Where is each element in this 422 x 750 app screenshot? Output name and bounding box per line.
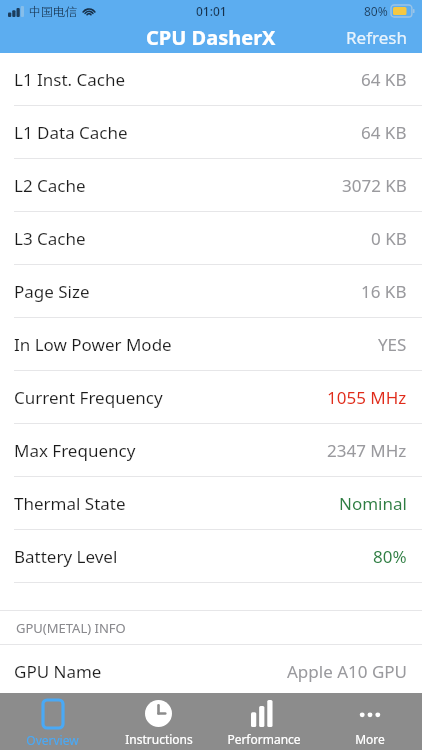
button[interactable]: Performance — [211, 693, 316, 750]
staticText: Max Frequency — [14, 439, 136, 462]
staticText: Battery Level — [14, 545, 118, 568]
staticText: Nominal — [339, 492, 407, 515]
staticText: 80% — [373, 545, 407, 568]
button[interactable]: GPU Name — [0, 645, 422, 698]
staticText: L3 Cache — [14, 227, 86, 250]
staticText: Overview — [26, 732, 79, 748]
staticText: CPU DasherX — [146, 24, 276, 51]
staticText: L1 Inst. Cache — [14, 68, 126, 91]
staticText: 16 KB — [361, 280, 407, 303]
staticText: Page Size — [14, 280, 90, 303]
button[interactable]: Battery Level — [0, 530, 422, 583]
button[interactable]: In Low Power Mode — [0, 318, 422, 371]
staticText: GPU Name — [14, 660, 102, 683]
staticText: In Low Power Mode — [14, 333, 172, 356]
staticText: 1055 MHz — [327, 386, 407, 409]
button[interactable]: L3 Cache — [0, 212, 422, 265]
staticText: Current Frequency — [14, 386, 163, 409]
staticText: Performance — [227, 731, 301, 747]
staticText: 中国电信 — [29, 4, 77, 19]
button[interactable]: L1 Data Cache — [0, 106, 422, 159]
staticText: GPU(METAL) INFO — [16, 619, 126, 637]
button[interactable]: Instructions — [106, 693, 211, 750]
staticText: 64 KB — [361, 68, 407, 91]
button[interactable]: Overview — [0, 693, 105, 750]
button[interactable]: Page Size — [0, 265, 422, 318]
button[interactable]: Thermal State — [0, 477, 422, 530]
button[interactable]: More — [317, 693, 422, 750]
staticText: Instructions — [125, 731, 193, 747]
button[interactable]: L1 Inst. Cache — [0, 53, 422, 106]
staticText: L1 Data Cache — [14, 121, 128, 144]
button[interactable]: Current Frequency — [0, 371, 422, 424]
staticText: L2 Cache — [14, 174, 86, 197]
staticText: 0 KB — [371, 227, 407, 250]
button[interactable]: Max Frequency — [0, 424, 422, 477]
staticText: 64 KB — [361, 121, 407, 144]
staticText: More — [355, 731, 385, 747]
staticText: Refresh — [346, 26, 407, 49]
staticText: 80% — [364, 3, 388, 19]
staticText: 3072 KB — [342, 174, 407, 197]
staticText: 2347 MHz — [327, 439, 407, 462]
staticText: Thermal State — [14, 492, 126, 515]
staticText: 01:01 — [196, 3, 227, 19]
staticText: YES — [378, 333, 407, 356]
staticText: Apple A10 GPU — [287, 660, 407, 683]
button[interactable]: L2 Cache — [0, 159, 422, 212]
button[interactable]: Refresh — [0, 22, 422, 53]
